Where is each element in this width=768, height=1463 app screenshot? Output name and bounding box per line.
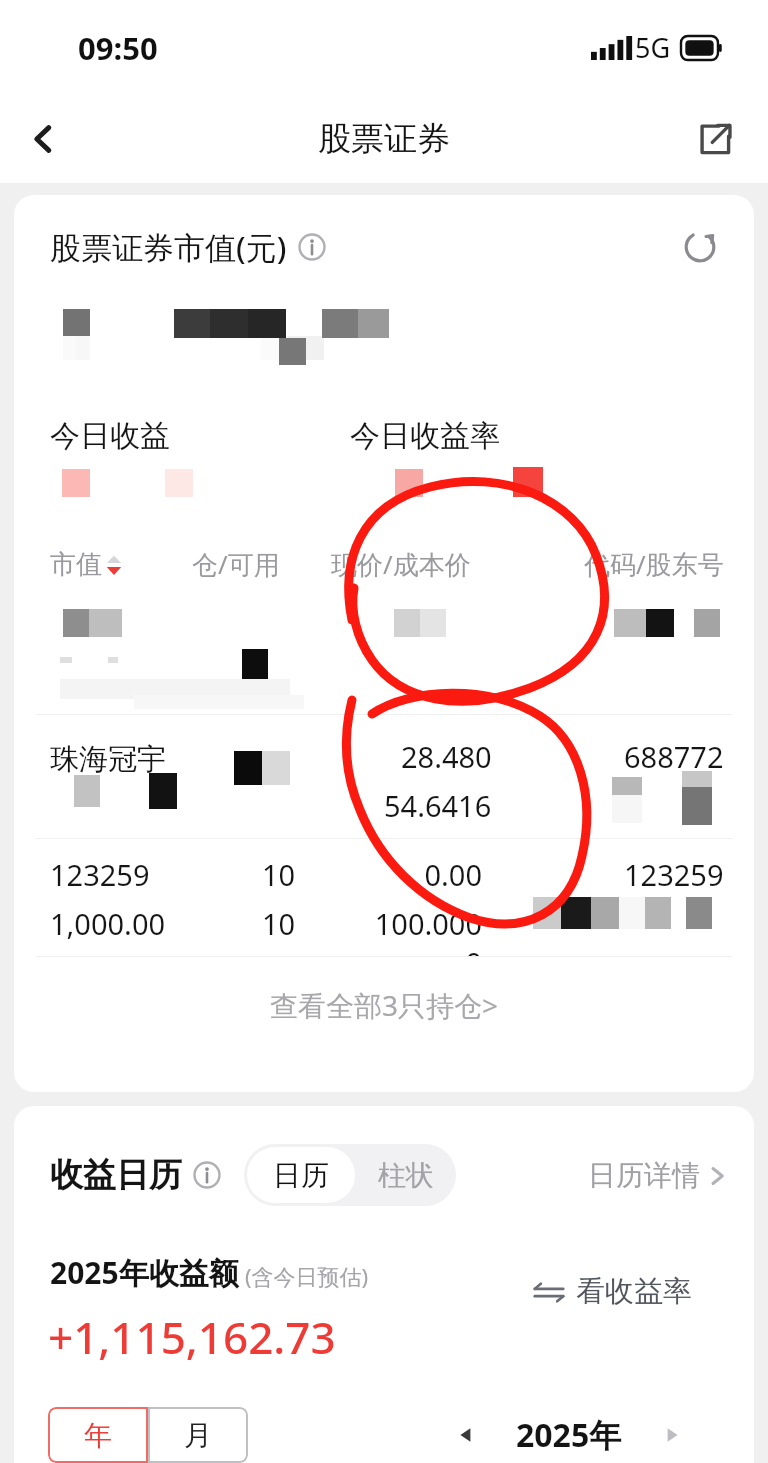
button[interactable]: 123259 [14,839,754,957]
button[interactable]: Next year [650,1413,694,1457]
button[interactable]: 日历 [247,1147,355,1203]
staticText: 珠海冠宇 [50,741,166,778]
staticText: 1,000.00 [50,904,166,943]
staticText: 5G [635,29,671,66]
staticText: 今日收益率 [350,417,500,455]
button[interactable]: 柱状 [356,1147,456,1203]
button[interactable]: 查看全部3只持仓> [14,957,754,1053]
staticText: 现价/成本价 [331,546,471,582]
staticText: 今日收益 [50,417,350,455]
staticText: 股票证券 [318,118,450,160]
staticText: 2025年 [516,1413,622,1457]
staticText: 仓/可用 [192,546,280,582]
staticText: 月 [184,1418,212,1453]
staticText: 123259 [50,855,150,894]
button[interactable]: Info [297,232,327,262]
staticText: 市值 [50,548,102,581]
button[interactable]: 珠海冠宇 [14,715,754,839]
staticText: 查看全部3只持仓> [270,986,499,1024]
staticText: 收益日历 [50,1154,182,1196]
staticText: 688772 [624,737,724,776]
staticText: 年 [84,1418,112,1453]
staticText: 100.0000 [362,904,482,957]
staticText: 09:50 [78,27,158,69]
staticText: 日历详情 [588,1158,700,1193]
staticText: 0.00 [362,855,482,894]
staticText: 10 [262,904,296,943]
staticText: (含今日预估) [245,1261,369,1291]
staticText: 日历 [273,1158,329,1193]
button[interactable]: 年 [48,1407,148,1463]
staticText: 123259 [624,855,724,894]
staticText: 股票证券市值(元) [50,226,287,268]
staticText: 2025年收益额 [50,1252,239,1293]
button[interactable]: Refresh [674,221,726,273]
staticText: 看收益率 [576,1273,692,1310]
staticText: 柱状 [378,1158,434,1193]
staticText: 28.480 [401,737,492,776]
button[interactable]: 市值 [50,548,122,581]
staticText: 10 [262,855,296,894]
button[interactable]: Share [687,111,743,167]
button[interactable]: Info [192,1160,222,1190]
staticText: +1,115,162.73 [48,1307,336,1367]
staticText: 代码/股东号 [584,546,724,582]
button[interactable]: 月 [148,1407,248,1463]
button[interactable]: Previous year [444,1413,488,1457]
button[interactable]: Back [14,109,74,169]
staticText: 54.6416 [384,786,492,825]
button[interactable]: 日历详情 [588,1158,728,1193]
button[interactable]: 看收益率 [532,1273,692,1310]
